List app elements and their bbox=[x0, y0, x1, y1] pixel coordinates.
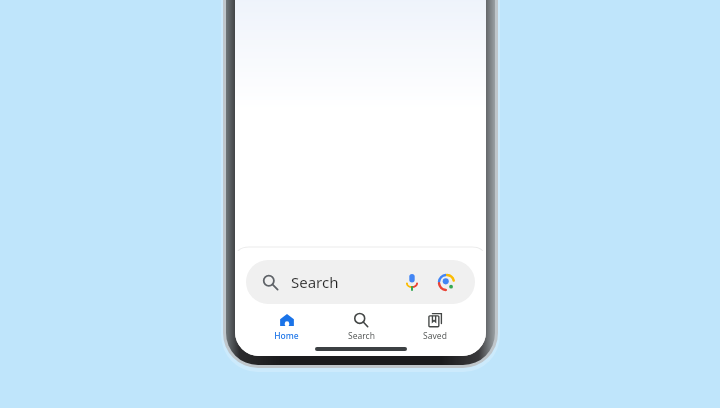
staticText: Home bbox=[274, 330, 299, 342]
staticText: Search bbox=[348, 330, 375, 342]
button[interactable]: Home bbox=[249, 311, 324, 343]
staticText: Search bbox=[291, 272, 339, 292]
button[interactable]: Search bbox=[246, 260, 475, 304]
staticText: Saved bbox=[423, 330, 447, 342]
button[interactable]: Saved bbox=[398, 311, 472, 343]
button[interactable]: Google Lens bbox=[433, 269, 459, 295]
button[interactable]: Voice search bbox=[399, 269, 425, 295]
button[interactable]: Search bbox=[324, 311, 398, 343]
